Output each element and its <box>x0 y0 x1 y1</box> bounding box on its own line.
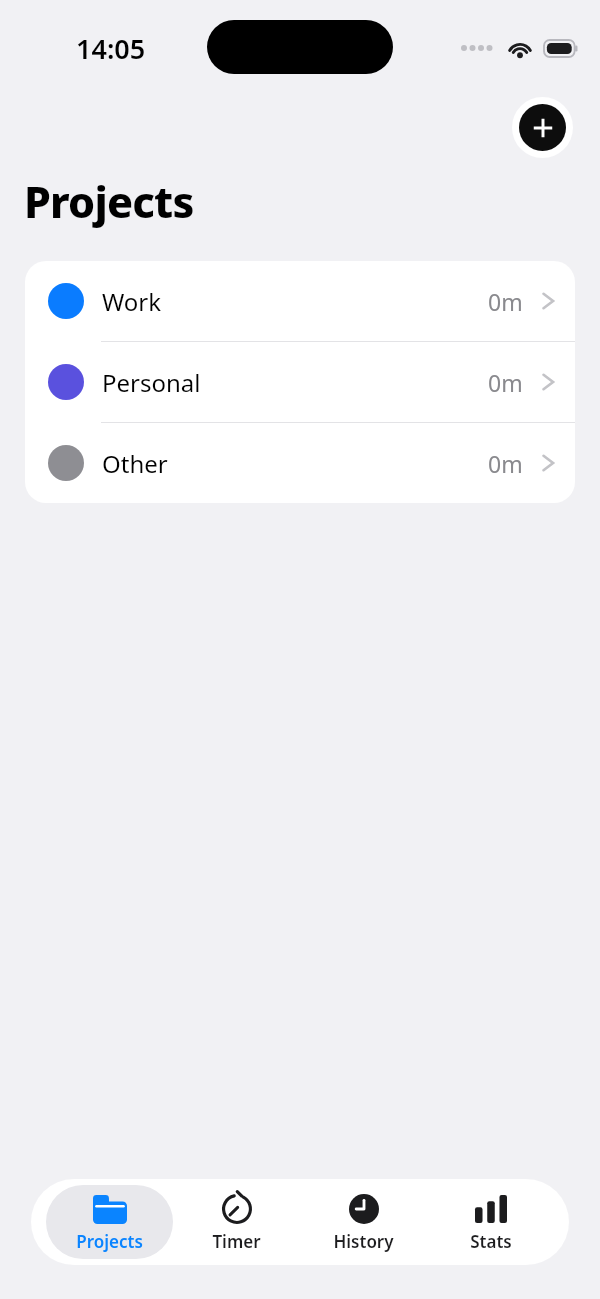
staticText: Personal <box>102 366 201 399</box>
staticText: Projects <box>76 1230 143 1253</box>
staticText: 0m <box>488 367 523 398</box>
button[interactable]: Add project <box>512 97 573 158</box>
staticText: Stats <box>470 1230 512 1253</box>
staticText: 0m <box>488 286 523 317</box>
button[interactable]: Projects <box>46 1185 173 1259</box>
staticText: Projects <box>24 172 194 231</box>
staticText: Work <box>102 285 162 318</box>
button[interactable]: History <box>300 1185 427 1259</box>
button[interactable]: Stats <box>427 1185 554 1259</box>
staticText: Timer <box>212 1230 261 1253</box>
staticText: History <box>333 1230 394 1253</box>
staticText: 14:05 <box>76 30 146 67</box>
staticText: Other <box>102 447 168 480</box>
button[interactable]: Timer <box>173 1185 300 1259</box>
button[interactable]: Personal <box>25 342 575 422</box>
button[interactable]: Other <box>25 423 575 503</box>
button[interactable]: Work <box>25 261 575 341</box>
staticText: 0m <box>488 448 523 479</box>
